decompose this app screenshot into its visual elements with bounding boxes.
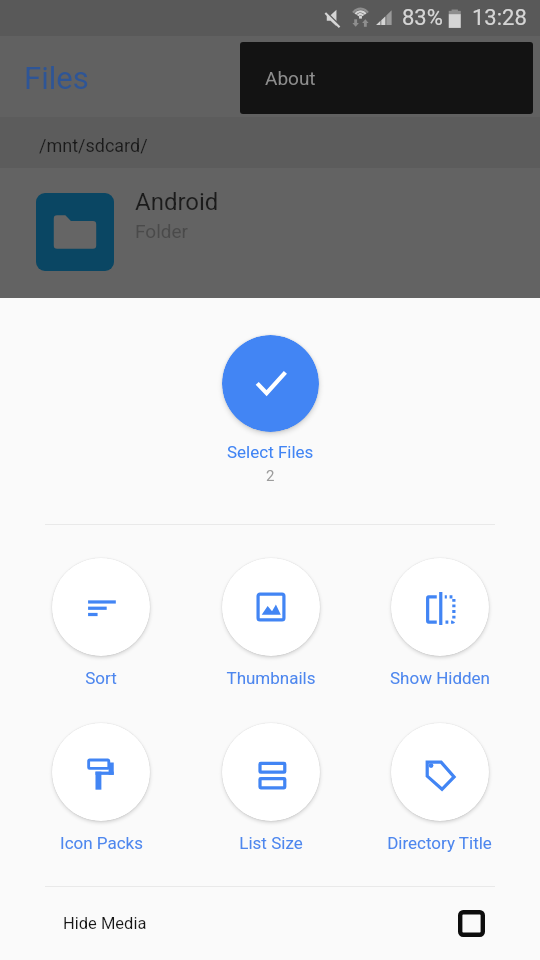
button[interactable]: Thumbnails xyxy=(186,558,355,688)
staticText: Show Hidden xyxy=(390,668,490,688)
button[interactable]: List Size xyxy=(186,723,355,853)
staticText: Thumbnails xyxy=(226,668,316,688)
button[interactable]: Sort xyxy=(16,558,186,688)
staticText: Directory Title xyxy=(387,833,492,853)
staticText: Sort xyxy=(85,668,117,688)
staticText: List Size xyxy=(239,833,303,853)
staticText: 83% xyxy=(402,5,443,31)
button[interactable]: About xyxy=(240,42,533,114)
staticText: About xyxy=(265,67,316,89)
staticText: 2 xyxy=(266,467,275,485)
button[interactable]: Select Files xyxy=(222,335,319,432)
staticText: Android xyxy=(135,188,219,216)
staticText: Files xyxy=(24,60,89,96)
button[interactable]: Icon Packs xyxy=(16,723,186,853)
button[interactable]: Hide Media xyxy=(0,887,540,960)
staticText: Icon Packs xyxy=(60,833,143,853)
staticText: /mnt/sdcard/ xyxy=(39,135,148,156)
button[interactable]: Directory Title xyxy=(355,723,524,853)
staticText: 13:28 xyxy=(472,5,527,31)
staticText: Select Files xyxy=(227,442,314,462)
button[interactable]: Show Hidden xyxy=(355,558,524,688)
staticText: Folder xyxy=(135,220,188,242)
staticText: Hide Media xyxy=(63,914,147,933)
